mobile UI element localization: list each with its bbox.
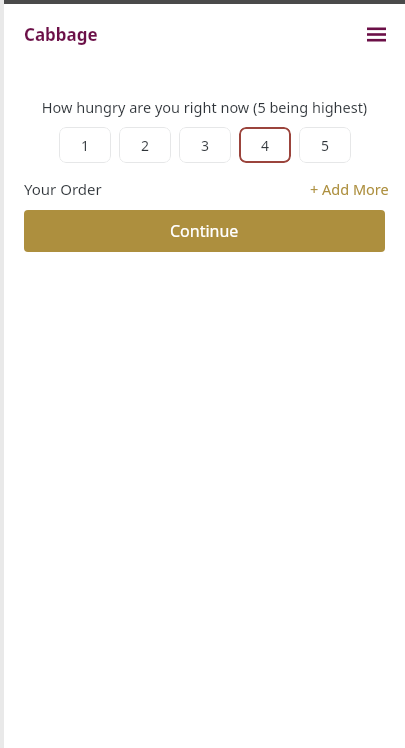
staticText: How hungry are you right now (5 being hi… — [16, 97, 393, 117]
staticText: 5 — [321, 136, 330, 155]
button[interactable]: Continue — [24, 210, 385, 252]
button[interactable]: Your Order — [24, 179, 102, 199]
button[interactable]: Cabbage — [24, 23, 98, 46]
button[interactable]: 4 — [239, 127, 291, 163]
button[interactable]: 1 — [59, 127, 111, 163]
staticText: 4 — [261, 136, 270, 155]
button[interactable]: Open menu — [361, 19, 391, 49]
button[interactable]: 2 — [119, 127, 171, 163]
staticText: 3 — [201, 136, 210, 155]
staticText: 2 — [141, 136, 150, 155]
button[interactable]: + Add More — [310, 179, 389, 199]
button[interactable]: 3 — [179, 127, 231, 163]
staticText: + Add More — [310, 179, 389, 199]
button[interactable]: 5 — [299, 127, 351, 163]
staticText: 1 — [81, 136, 90, 155]
staticText: Continue — [170, 220, 239, 242]
